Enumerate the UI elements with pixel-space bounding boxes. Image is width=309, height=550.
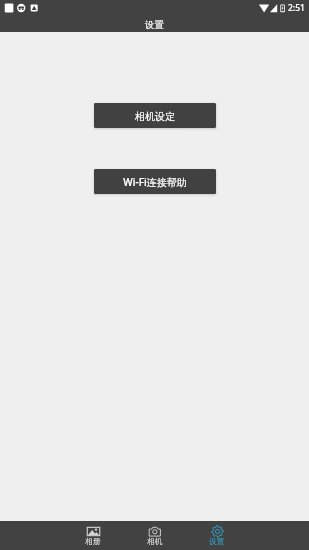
staticText: Wi-Fi连接帮助 xyxy=(123,175,187,189)
staticText: 设置 xyxy=(145,19,164,31)
button[interactable]: Wi-Fi连接帮助 xyxy=(94,169,216,194)
button[interactable]: 相机设定 xyxy=(94,103,216,128)
button[interactable]: 相册 xyxy=(62,521,124,550)
button[interactable]: 相机 xyxy=(124,521,186,550)
staticText: 相机设定 xyxy=(135,110,175,123)
staticText: 相机 xyxy=(147,536,163,546)
staticText: 设置 xyxy=(209,536,225,546)
staticText: 2:51 xyxy=(288,2,305,14)
button[interactable]: 设置 xyxy=(186,521,248,550)
staticText: 相册 xyxy=(85,536,101,546)
